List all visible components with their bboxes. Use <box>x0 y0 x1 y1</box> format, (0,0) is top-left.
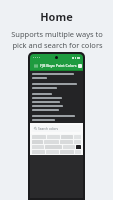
staticText: pick and search for colors <box>12 40 103 50</box>
button[interactable]: Palette <box>77 62 83 69</box>
staticText: FJB Boyo Paint Colors <box>40 63 77 68</box>
staticText: Supports multiple ways to <box>11 29 103 39</box>
staticText: Search colors <box>38 127 58 131</box>
button[interactable] <box>76 145 81 149</box>
button[interactable]: Open navigation menu <box>32 62 39 69</box>
staticText: Home <box>40 9 73 24</box>
button[interactable]: Search colors <box>32 125 81 132</box>
